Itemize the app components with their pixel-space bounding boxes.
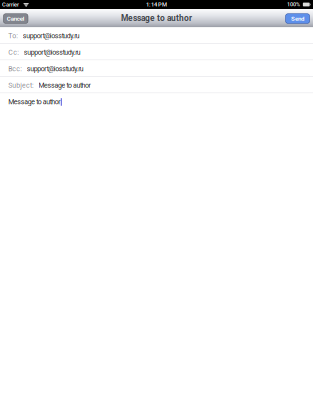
staticText: 1:14 PM [146,1,167,8]
staticText: 100% [287,1,300,8]
button[interactable]: Bcc: [0,60,313,77]
button[interactable]: Send [286,14,310,23]
button[interactable]: Cancel [3,14,28,23]
staticText: Message to author [8,98,60,106]
button[interactable]: Message to author [0,93,313,417]
staticText: support@iosstudy.ru [27,65,84,73]
button[interactable]: Subject: [0,77,313,93]
staticText: Cancel [7,15,25,22]
staticText: Cc: [8,48,19,56]
staticText: Subject: [8,81,34,89]
button[interactable]: Cc: [0,44,313,60]
staticText: Carrier [2,1,19,8]
staticText: Send [291,15,304,22]
staticText: Message to author [39,81,91,89]
staticText: To: [8,32,18,40]
staticText: Message to author [121,13,192,23]
staticText: support@iosstudy.ru [23,32,80,40]
button[interactable]: To: [0,27,313,44]
staticText: Bcc: [8,65,22,73]
staticText: support@iosstudy.ru [24,48,81,56]
